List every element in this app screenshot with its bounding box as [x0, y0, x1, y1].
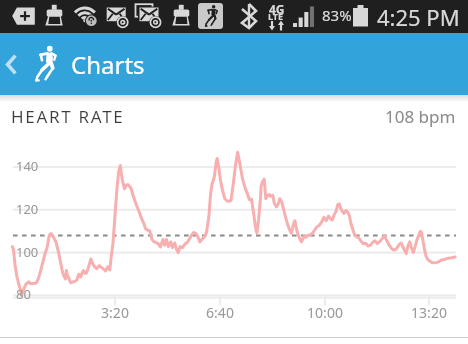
staticText: 120	[16, 200, 39, 218]
staticText: 6:40	[190, 303, 250, 322]
staticText: HEART RATE	[11, 105, 125, 128]
staticText: 100	[16, 243, 39, 261]
staticText: Charts	[71, 48, 145, 81]
button[interactable]: Back	[0, 33, 468, 95]
staticText: 10:00	[295, 303, 355, 322]
staticText: 140	[16, 157, 39, 175]
staticText: 4:25 PM	[377, 2, 460, 32]
staticText: 80	[16, 285, 31, 303]
staticText: 3:20	[85, 303, 145, 322]
staticText: LTE	[268, 10, 284, 22]
button[interactable]: Back	[0, 46, 22, 82]
staticText: 13:20	[399, 303, 459, 322]
staticText: 4G	[269, 1, 285, 17]
staticText: 83%	[322, 5, 352, 25]
staticText: 108 bpm	[385, 105, 456, 128]
